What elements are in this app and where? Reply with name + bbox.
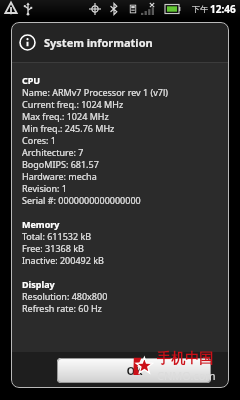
- staticText: Serial #: 0000000000000000: [22, 194, 141, 206]
- staticText: 下午: [192, 4, 208, 14]
- staticText: Free: 31368 kB: [22, 242, 84, 254]
- staticText: Name: ARMv7 Processor rev 1 (v7l): [22, 86, 168, 98]
- staticText: Current freq.: 1024 MHz: [22, 98, 124, 110]
- staticText: BogoMIPS: 681.57: [22, 158, 99, 170]
- staticText: Memory: [22, 218, 60, 230]
- staticText: System information: [44, 35, 153, 50]
- staticText: 12:46: [210, 2, 236, 16]
- staticText: 手机中国: [157, 350, 213, 368]
- staticText: OK: [126, 363, 143, 378]
- other: CNMO.com watermark: [130, 350, 216, 383]
- staticText: Revision: 1: [22, 182, 67, 194]
- staticText: Architecture: 7: [22, 146, 84, 158]
- button[interactable]: OK: [57, 358, 211, 383]
- staticText: Max freq.: 1024 MHz: [22, 110, 109, 122]
- staticText: Refresh rate: 60 Hz: [22, 302, 102, 314]
- staticText: Display: [22, 278, 55, 290]
- staticText: Min freq.: 245.76 MHz: [22, 122, 115, 134]
- staticText: Resolution: 480x800: [22, 290, 108, 302]
- staticText: CNMO.com: [157, 368, 216, 383]
- staticText: Total: 611532 kB: [22, 230, 92, 242]
- staticText: Inactive: 200492 kB: [22, 254, 104, 266]
- staticText: CPU: [22, 74, 41, 86]
- staticText: Hardware: mecha: [22, 170, 97, 182]
- staticText: Cores: 1: [22, 134, 56, 146]
